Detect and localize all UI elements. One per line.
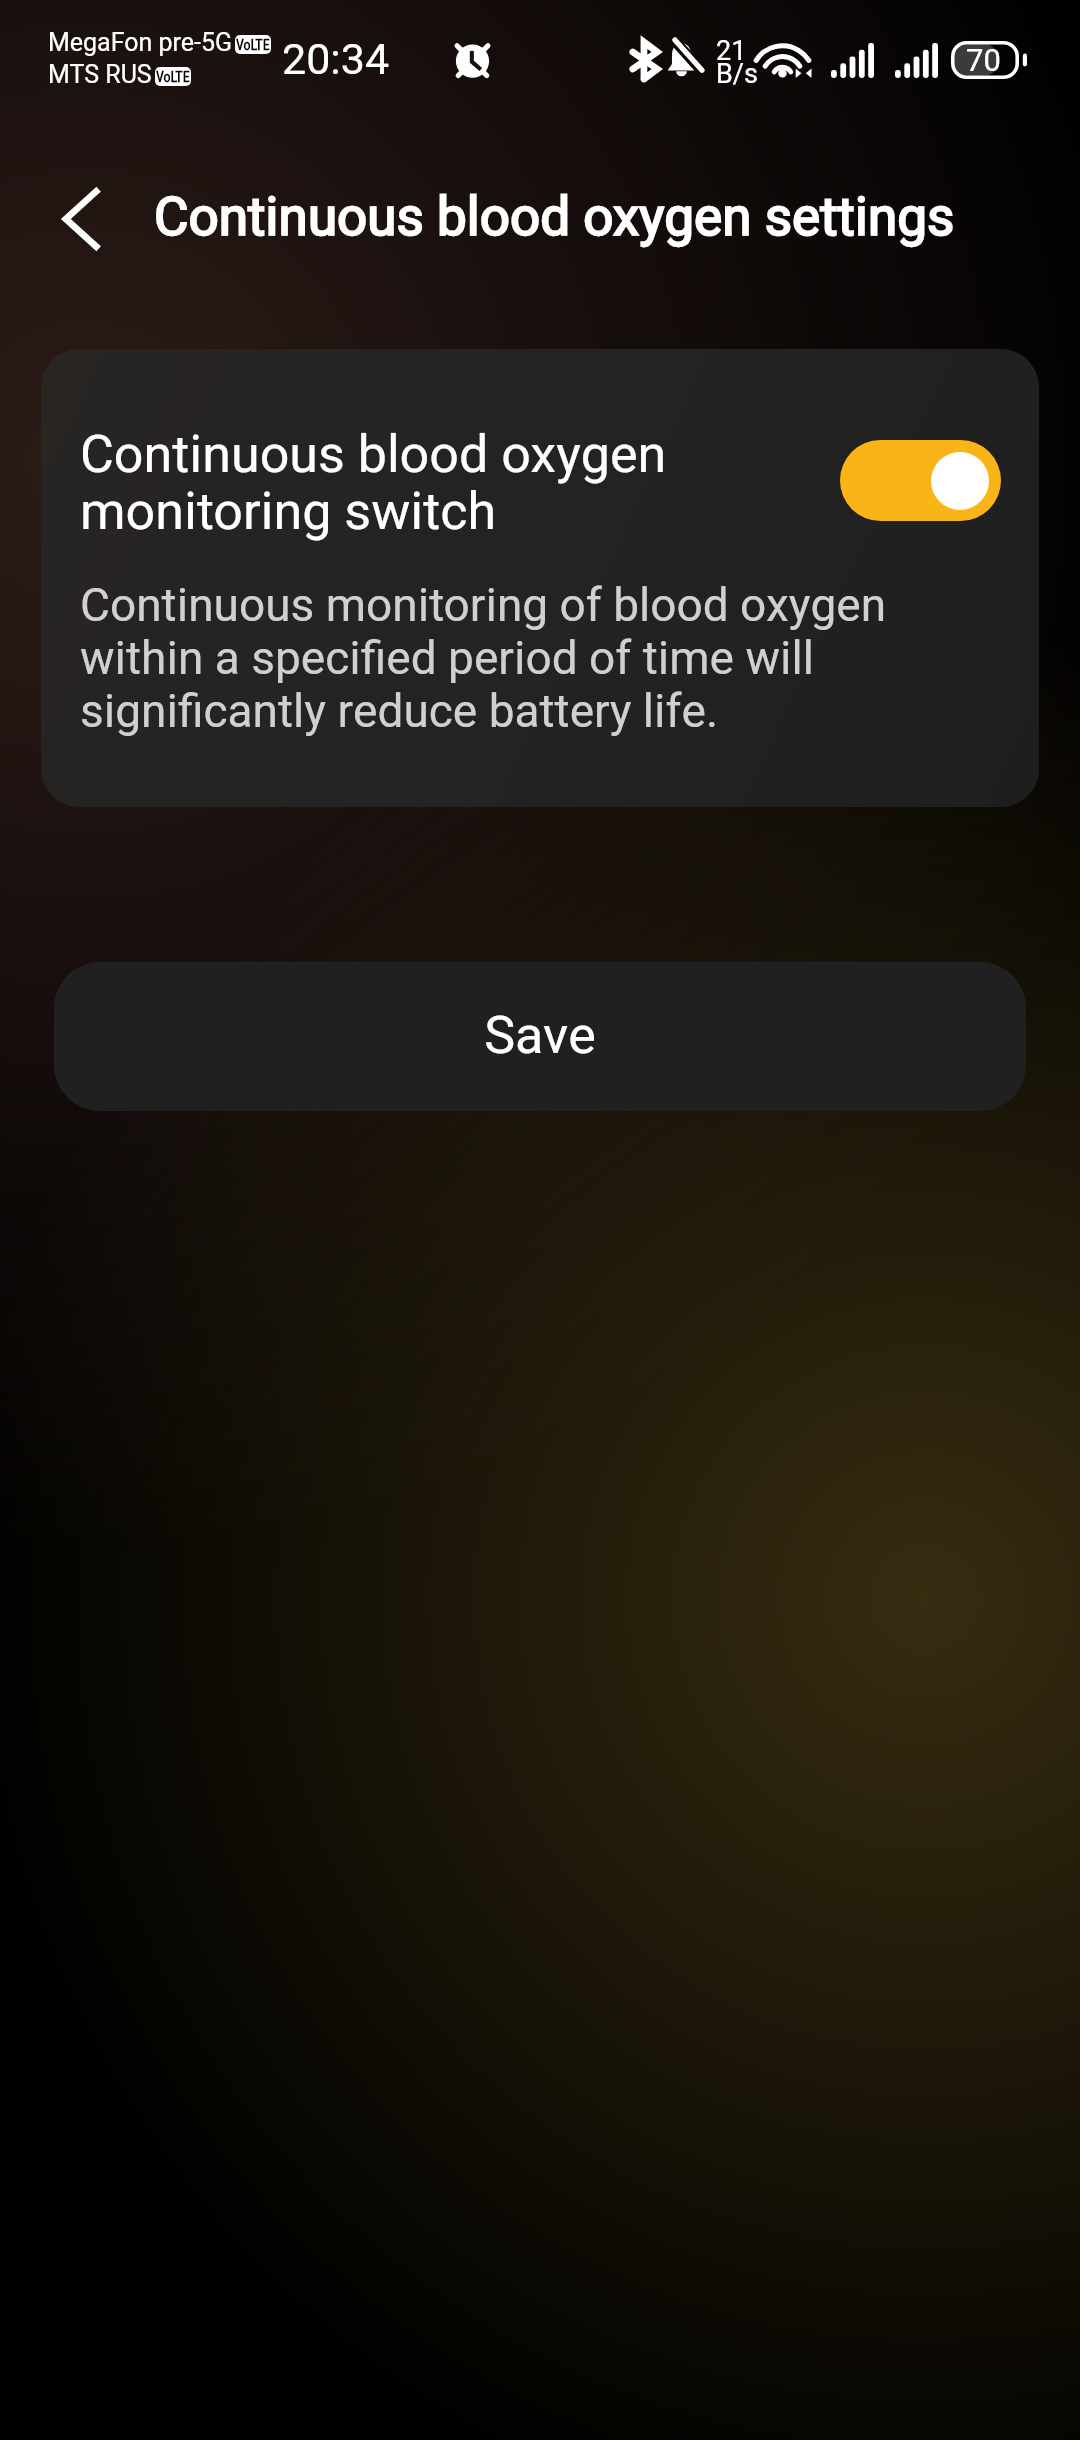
staticText: B/s: [716, 58, 758, 90]
button[interactable]: Back: [38, 176, 124, 262]
staticText: MTS RUS: [48, 60, 152, 89]
button[interactable]: Save: [54, 962, 1026, 1111]
staticText: Continuous blood oxygen settings: [154, 179, 955, 257]
staticText: Save: [484, 999, 596, 1075]
staticText: 20:34: [282, 34, 390, 84]
staticText: 21: [716, 35, 747, 67]
staticText: MegaFon pre-5G: [48, 28, 233, 57]
staticText: 70: [966, 42, 1001, 78]
button[interactable]: Continuous blood oxygen monitoring switc…: [840, 440, 1001, 521]
staticText: Continuous monitoring of blood oxygen wi…: [80, 573, 887, 746]
staticText: Continuous blood oxygen monitoring switc…: [80, 418, 667, 551]
staticText: VoLTE: [156, 69, 190, 85]
staticText: VoLTE: [236, 37, 270, 53]
